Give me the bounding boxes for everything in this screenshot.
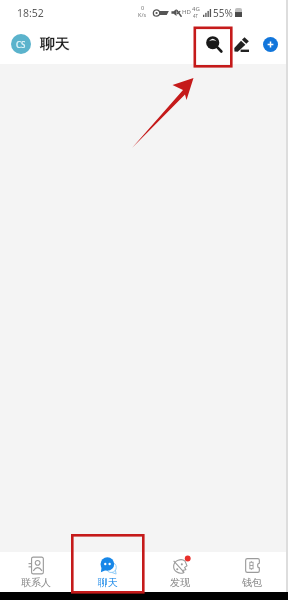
staticText: 发现 bbox=[170, 576, 190, 589]
staticText: 55% bbox=[213, 6, 233, 20]
staticText: CS bbox=[16, 39, 26, 50]
button[interactable]: Compose bbox=[226, 29, 256, 59]
staticText: HD bbox=[182, 8, 191, 16]
button[interactable]: 聊天 bbox=[72, 556, 144, 589]
button[interactable]: Search bbox=[190, 26, 226, 62]
button[interactable]: Add bbox=[256, 30, 284, 58]
button[interactable]: 发现 bbox=[144, 556, 216, 589]
staticText: 聊天 bbox=[40, 35, 69, 53]
button[interactable]: 钱包 bbox=[216, 556, 288, 589]
staticText: 4T bbox=[193, 13, 199, 19]
staticText: 钱包 bbox=[242, 576, 262, 589]
button[interactable]: 联系人 bbox=[0, 556, 72, 589]
staticText: K/s bbox=[138, 11, 147, 18]
staticText: 0 bbox=[141, 4, 145, 11]
button[interactable]: Profile bbox=[11, 34, 31, 54]
staticText: 联系人 bbox=[21, 576, 51, 589]
staticText: 18:52 bbox=[17, 6, 44, 20]
staticText: 4G bbox=[192, 5, 200, 13]
staticText: 聊天 bbox=[98, 576, 118, 589]
